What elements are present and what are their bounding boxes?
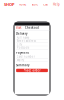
staticText: Payment <box>16 51 29 54</box>
staticText: Full name <box>17 36 30 39</box>
staticText: Summary <box>16 63 29 67</box>
staticText: Store <box>31 3 38 6</box>
staticText: Cart <box>43 3 48 6</box>
staticText: SHOP <box>4 2 14 7</box>
staticText: Home <box>19 3 27 6</box>
staticText: Street address <box>17 39 36 43</box>
staticText: Help <box>53 3 60 6</box>
staticText: City <box>17 43 22 46</box>
staticText: Postcode <box>17 46 30 49</box>
staticText: Place order <box>23 69 40 72</box>
staticText: Back <box>16 26 21 29</box>
staticText: Delivery <box>16 32 27 35</box>
staticText: Expiry <box>17 58 24 62</box>
button[interactable]: Place order <box>16 69 48 72</box>
staticText: Checkout <box>25 26 39 29</box>
staticText: Card number <box>17 55 35 58</box>
